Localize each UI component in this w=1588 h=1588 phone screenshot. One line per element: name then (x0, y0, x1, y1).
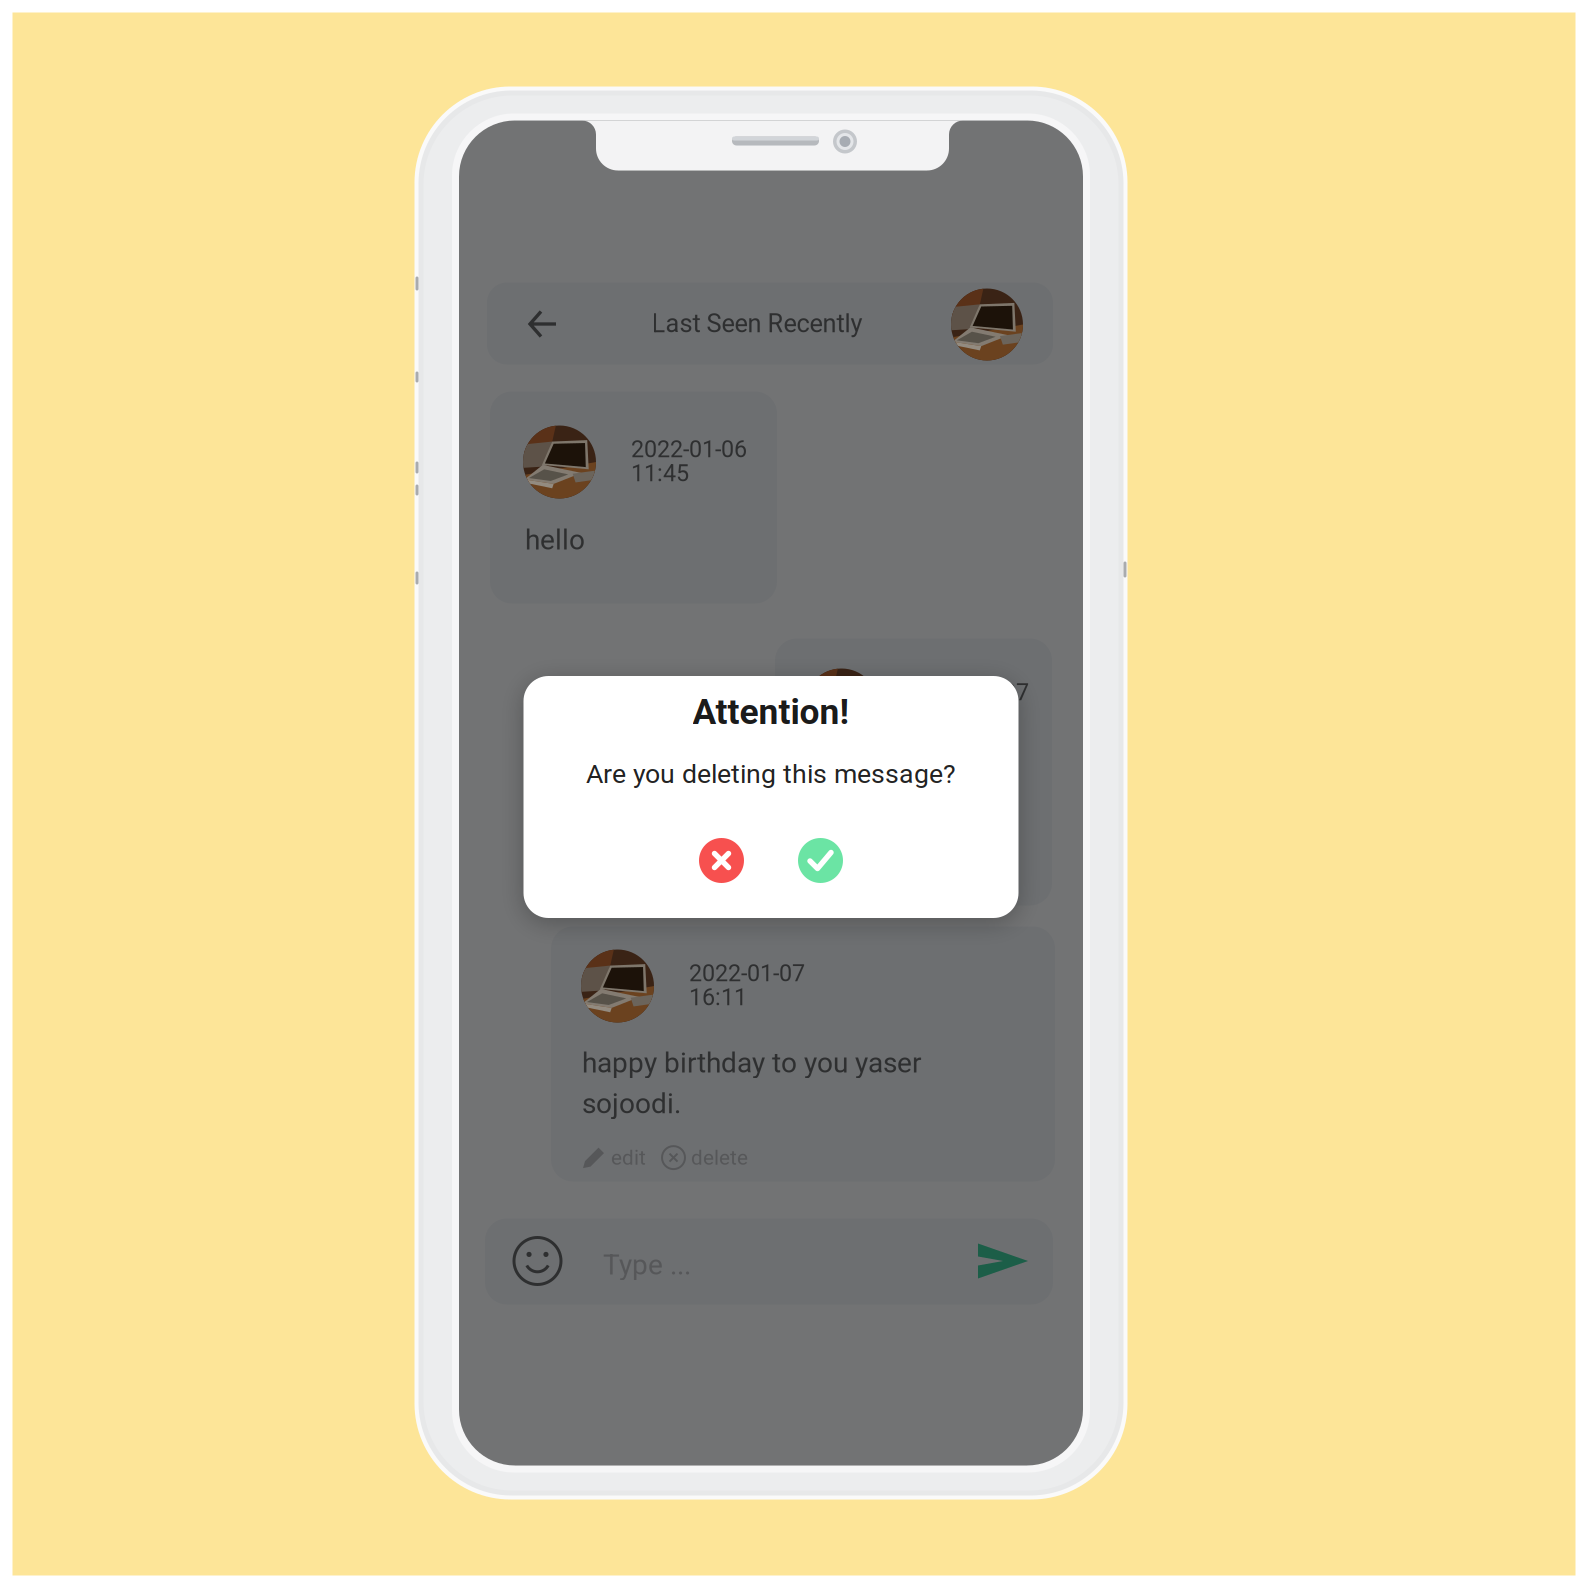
staticText: 11:45 (631, 459, 689, 487)
button[interactable]: edit (582, 1145, 646, 1170)
staticText: thanks! (807, 766, 896, 799)
button[interactable]: Cancel (699, 838, 744, 883)
button[interactable]: Send (977, 1242, 1029, 1279)
staticText: edit (611, 1145, 646, 1170)
staticText: 2022-01-07 (689, 959, 805, 987)
staticText: Are you deleting this message? (586, 758, 956, 790)
button[interactable]: Type ... (485, 1218, 1053, 1304)
staticText: Attention! (692, 691, 849, 733)
staticText: hello (525, 523, 585, 556)
button[interactable]: Contact profile (951, 288, 1023, 360)
staticText: delete (691, 1145, 748, 1170)
staticText: sojoodi. (582, 1087, 681, 1120)
button[interactable]: Last Seen Recently (487, 282, 1053, 364)
staticText: Type ... (603, 1248, 691, 1281)
button[interactable]: Confirm delete (798, 838, 843, 883)
staticText: 2022-01-07 (913, 678, 1029, 706)
button[interactable]: Back (528, 308, 558, 339)
button[interactable]: delete (662, 1145, 748, 1170)
staticText: happy birthday to you yaser (582, 1046, 921, 1079)
staticText: 16:11 (689, 983, 747, 1011)
staticText: Last Seen Recently (651, 309, 862, 338)
staticText: 2022-01-06 (631, 435, 747, 463)
